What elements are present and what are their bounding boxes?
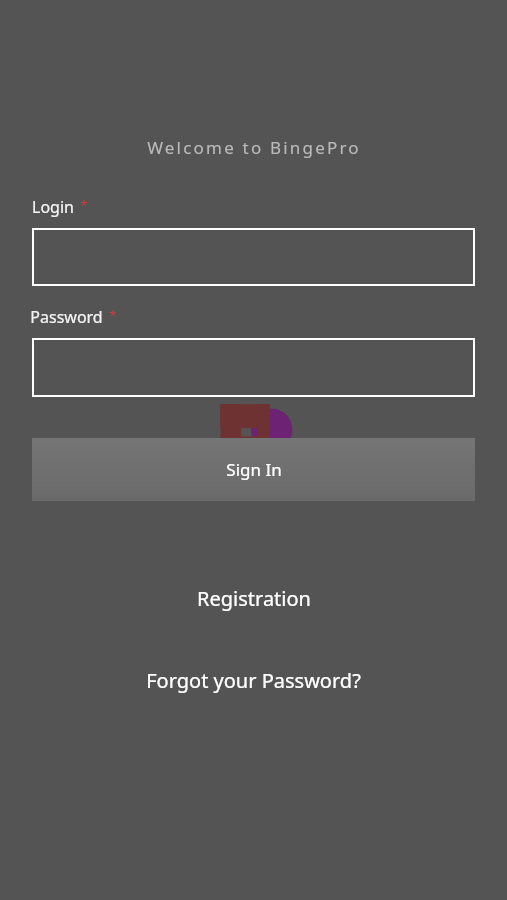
button[interactable] <box>32 228 475 286</box>
staticText: * <box>80 196 88 214</box>
staticText: Password <box>30 306 103 328</box>
staticText: Login <box>32 196 74 218</box>
button[interactable]: Forgot your Password? <box>0 659 507 701</box>
button[interactable] <box>32 338 475 397</box>
staticText: Welcome to BingePro <box>147 136 361 159</box>
staticText: * <box>109 306 117 324</box>
staticText: Sign In <box>226 458 282 481</box>
button[interactable]: Sign In <box>32 438 475 501</box>
staticText: Registration <box>197 585 311 612</box>
staticText: Forgot your Password? <box>146 667 361 694</box>
button[interactable]: Registration <box>0 577 507 619</box>
